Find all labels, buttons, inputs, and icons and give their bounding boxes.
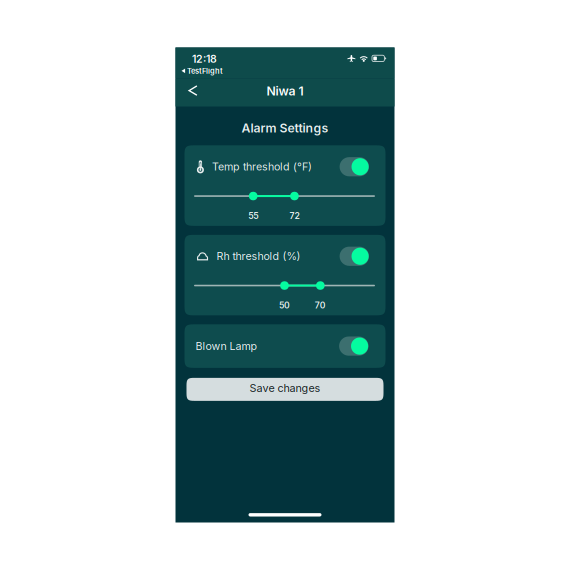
button[interactable]: Save changes (186, 378, 383, 401)
staticText: 72 (289, 210, 299, 221)
staticText: Save changes (249, 382, 320, 395)
button[interactable]: Toggle (340, 157, 369, 176)
staticText: Blown Lamp (195, 340, 257, 352)
button[interactable]: Toggle (340, 247, 369, 266)
staticText: Alarm Settings (241, 120, 328, 135)
staticText: 70 (315, 300, 326, 310)
staticText: Niwa 1 (266, 84, 303, 98)
button[interactable]: Back (183, 81, 207, 104)
staticText: TestFlight (187, 66, 223, 75)
staticText: Rh threshold (%) (216, 250, 300, 263)
staticText: 55 (248, 210, 258, 221)
staticText: Temp threshold (°F) (212, 160, 312, 173)
button[interactable]: Toggle (339, 336, 368, 356)
staticText: 50 (279, 300, 290, 310)
staticText: 12:18 (192, 52, 217, 65)
